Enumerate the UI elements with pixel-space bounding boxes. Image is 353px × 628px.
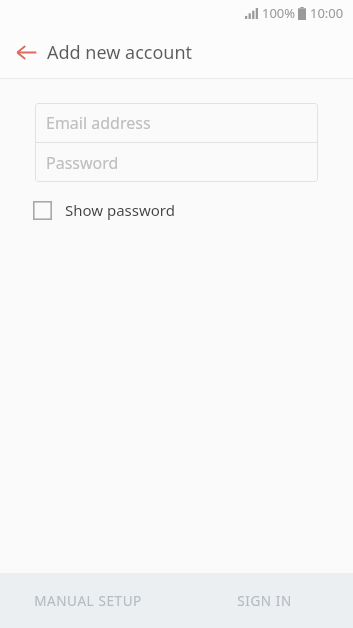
staticText: Add new account: [47, 40, 193, 65]
staticText: MANUAL SETUP: [34, 592, 142, 610]
button[interactable]: Show password: [28, 198, 185, 222]
staticText: Email address: [46, 112, 151, 134]
button[interactable]: MANUAL SETUP: [0, 573, 176, 628]
button[interactable]: Password: [35, 143, 318, 182]
staticText: SIGN IN: [237, 592, 292, 610]
staticText: 100%: [262, 4, 296, 22]
staticText: Show password: [65, 200, 175, 220]
staticText: Password: [46, 152, 119, 174]
button[interactable]: Back: [8, 34, 44, 70]
staticText: 10:00: [310, 4, 344, 22]
button[interactable]: SIGN IN: [176, 573, 353, 628]
button[interactable]: Email address: [35, 103, 318, 142]
